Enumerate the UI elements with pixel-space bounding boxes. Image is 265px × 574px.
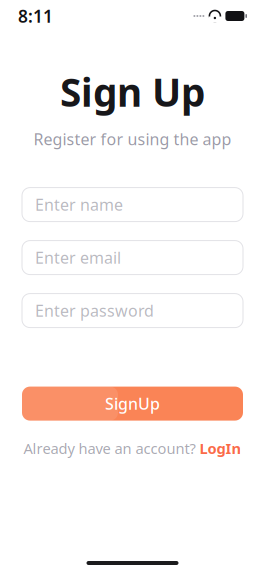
button[interactable]: Already have an account? (17, 436, 247, 461)
staticText: SignUp (105, 393, 160, 414)
staticText: Enter email (35, 247, 121, 268)
staticText: LogIn (199, 439, 241, 458)
button[interactable]: Enter password (22, 294, 243, 328)
button[interactable]: Enter email (22, 241, 243, 275)
staticText: Enter password (35, 300, 154, 321)
button[interactable]: Enter name (22, 188, 243, 222)
staticText: Enter name (35, 194, 123, 215)
staticText: Register for using the app (33, 128, 231, 149)
staticText: 8:11 (18, 4, 53, 27)
staticText: Sign Up (60, 66, 205, 117)
staticText: Already have an account? (23, 439, 195, 458)
button[interactable]: SignUp (22, 387, 243, 421)
